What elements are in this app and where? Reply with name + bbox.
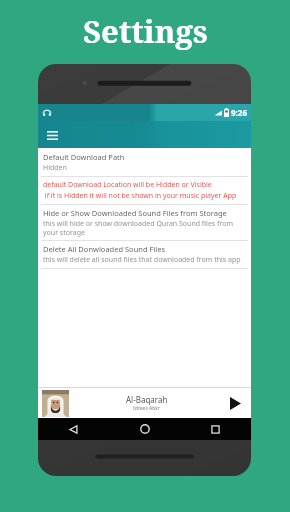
staticText: Idrees Abkr <box>133 405 161 412</box>
button[interactable]: Hide or Show Downloaded Sound Files from… <box>38 205 251 240</box>
staticText: Hidden <box>43 163 67 173</box>
staticText: Settings <box>83 10 208 52</box>
button[interactable]: Back <box>38 418 109 440</box>
staticText: Delete All Donwloaded Sound Files <box>43 244 166 254</box>
button[interactable]: Play <box>225 393 245 413</box>
staticText: Hide or Show Downloaded Sound Files from… <box>43 208 227 218</box>
staticText: 9:26 <box>231 107 247 118</box>
button[interactable]: Recent apps <box>180 418 251 440</box>
staticText: default Download Location will be Hidden… <box>43 180 212 190</box>
button[interactable]: Home <box>109 418 180 440</box>
button[interactable]: Default Download Path <box>38 148 251 176</box>
staticText: Al-Baqarah <box>126 394 168 405</box>
staticText: if it is Hidden it will not be shown in … <box>43 191 237 201</box>
button[interactable]: Delete All Donwloaded Sound Files <box>38 241 251 268</box>
staticText: this will delete all sound files that do… <box>43 255 241 265</box>
staticText: this will hide or show downloaded Quran … <box>43 219 245 237</box>
button[interactable]: Open navigation menu <box>41 124 63 146</box>
button[interactable]: Al-Baqarah <box>38 388 251 418</box>
staticText: Default Download Path <box>43 152 125 162</box>
